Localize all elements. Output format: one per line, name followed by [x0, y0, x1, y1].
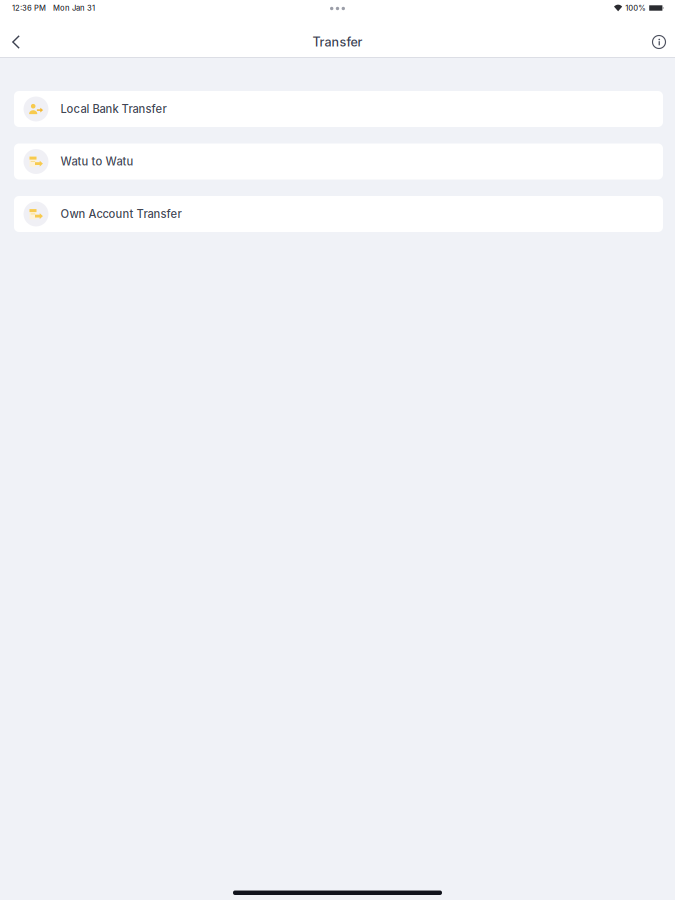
button[interactable]: Back [0, 27, 32, 57]
button[interactable]: Information [643, 27, 675, 57]
button[interactable]: Own Account Transfer [14, 196, 663, 232]
staticText: Mon Jan 31 [53, 3, 95, 13]
button[interactable]: Local Bank Transfer [14, 91, 663, 127]
staticText: 100% [625, 3, 646, 13]
button[interactable]: Watu to Watu [14, 143, 663, 179]
staticText: 12:36 PM [12, 3, 46, 13]
staticText: Local Bank Transfer [60, 102, 166, 116]
staticText: Transfer [312, 34, 362, 50]
staticText: Watu to Watu [60, 155, 133, 168]
staticText: Own Account Transfer [60, 207, 181, 221]
